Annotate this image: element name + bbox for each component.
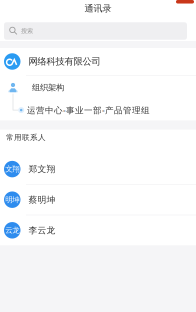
button[interactable]: 运营中心-事业一部-产品管理组 [0, 100, 196, 121]
staticText: 郑文翔 [28, 164, 55, 175]
button[interactable]: 云龙 [0, 215, 196, 245]
staticText: 李云龙 [28, 225, 55, 236]
staticText: 云龙 [5, 226, 19, 235]
staticText: 蔡明坤 [28, 194, 55, 205]
button[interactable]: 文翔 [0, 154, 196, 184]
staticText: 文翔 [5, 164, 19, 174]
button[interactable]: 组织架构 [0, 76, 196, 100]
button[interactable]: 明坤 [0, 185, 196, 215]
staticText: 明坤 [5, 195, 19, 204]
staticText: 常用联系人 [6, 133, 46, 142]
button[interactable]: Search [4, 22, 187, 40]
staticText: 网络科技有限公司 [28, 56, 100, 67]
staticText: 通讯录 [84, 3, 111, 14]
button[interactable]: 网络科技有限公司 [0, 48, 196, 75]
button[interactable]: Add contact [176, 0, 194, 3]
staticText: 搜索 [21, 27, 33, 35]
staticText: 运营中心-事业一部-产品管理组 [27, 104, 150, 116]
staticText: 组织架构 [32, 82, 64, 93]
